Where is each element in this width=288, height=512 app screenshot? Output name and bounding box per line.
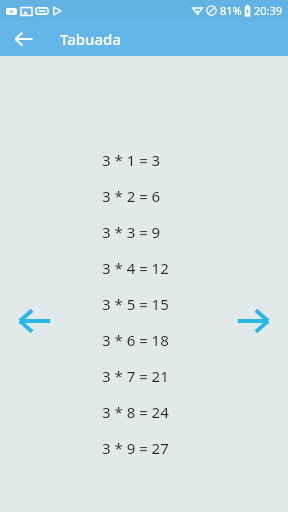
staticText: 3 * 2 = 6 xyxy=(102,186,161,206)
staticText: 3 * 8 = 24 xyxy=(102,402,169,422)
staticText: 3 * 7 = 21 xyxy=(102,366,169,386)
staticText: 20:39 xyxy=(254,3,283,18)
staticText: 3 * 6 = 18 xyxy=(102,330,169,350)
staticText: 3 * 3 = 9 xyxy=(102,222,161,242)
button[interactable]: Next table xyxy=(228,296,278,346)
staticText: 3 * 1 = 3 xyxy=(102,150,161,170)
staticText: 3 * 5 = 15 xyxy=(102,294,169,314)
button[interactable]: Back xyxy=(4,21,44,56)
staticText: 3 * 9 = 27 xyxy=(102,438,169,458)
staticText: 81% xyxy=(220,3,242,18)
staticText: 3 * 4 = 12 xyxy=(102,258,169,278)
button[interactable]: Previous table xyxy=(10,296,60,346)
staticText: Tabuada xyxy=(60,29,121,49)
